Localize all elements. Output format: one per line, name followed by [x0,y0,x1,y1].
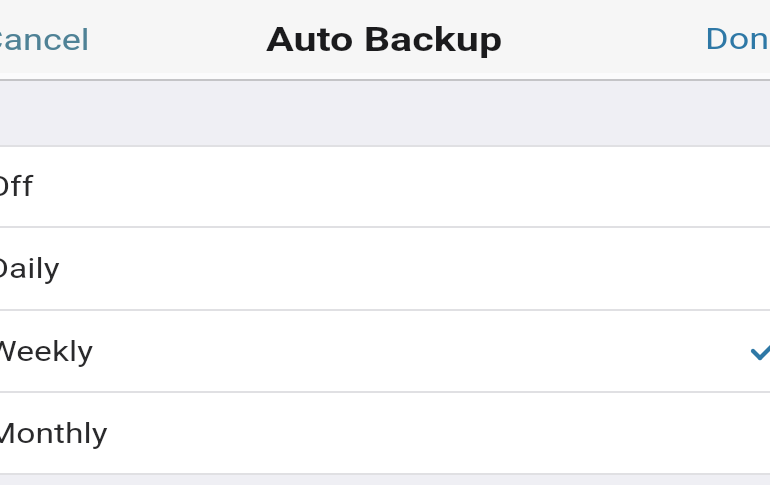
button[interactable]: Daily [0,228,770,309]
staticText: Done [705,21,770,56]
staticText: Off [0,170,34,203]
staticText: Cancel [0,22,90,57]
staticText: Monthly [0,417,108,450]
staticText: Weekly [0,335,94,368]
button[interactable]: Weekly [0,311,770,391]
button[interactable]: Monthly [0,393,770,473]
button[interactable]: Off [0,147,770,226]
button[interactable]: Done [705,8,770,68]
button[interactable]: Cancel [0,9,72,69]
staticText: Auto Backup [266,19,503,59]
other: Selected [750,338,770,372]
staticText: Daily [0,252,60,285]
